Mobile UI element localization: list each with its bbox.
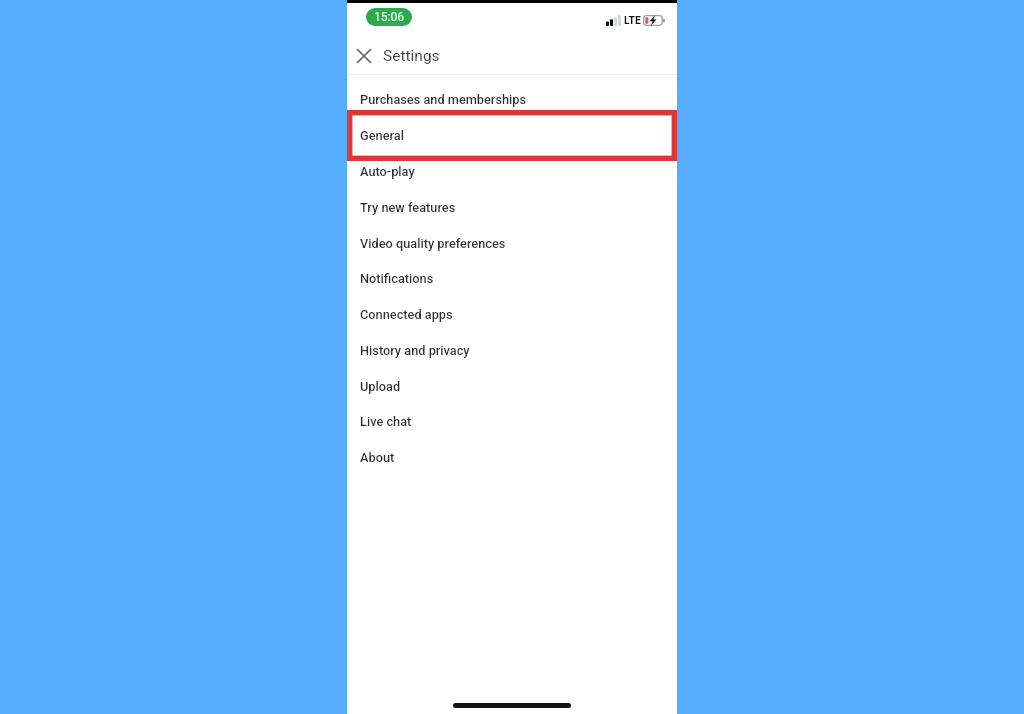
staticText: About [360,450,395,465]
staticText: Notifications [360,271,434,286]
staticText: Live chat [360,414,412,429]
staticText: Try new features [360,200,456,215]
button[interactable]: Purchases and memberships [347,81,677,117]
button[interactable]: Close settings [346,38,382,74]
button[interactable]: Notifications [347,260,677,296]
staticText: 15:06 [374,10,405,24]
button[interactable]: Live chat [347,403,677,439]
staticText: Purchases and memberships [360,92,527,107]
staticText: Settings [383,47,440,65]
button[interactable]: Try new features [347,189,677,225]
staticText: LTE [624,14,641,26]
button[interactable]: Auto-play [347,153,677,189]
button[interactable]: Video quality preferences [347,225,677,261]
button[interactable]: About [347,439,677,475]
staticText: Connected apps [360,307,453,322]
staticText: Video quality preferences [360,236,506,251]
staticText: Auto-play [360,164,415,179]
button[interactable]: History and privacy [347,332,677,368]
button[interactable]: Connected apps [347,296,677,332]
staticText: History and privacy [360,343,470,358]
button[interactable]: General [347,117,677,153]
button[interactable]: Upload [347,368,677,404]
staticText: General [360,128,404,143]
staticText: Upload [360,379,401,394]
